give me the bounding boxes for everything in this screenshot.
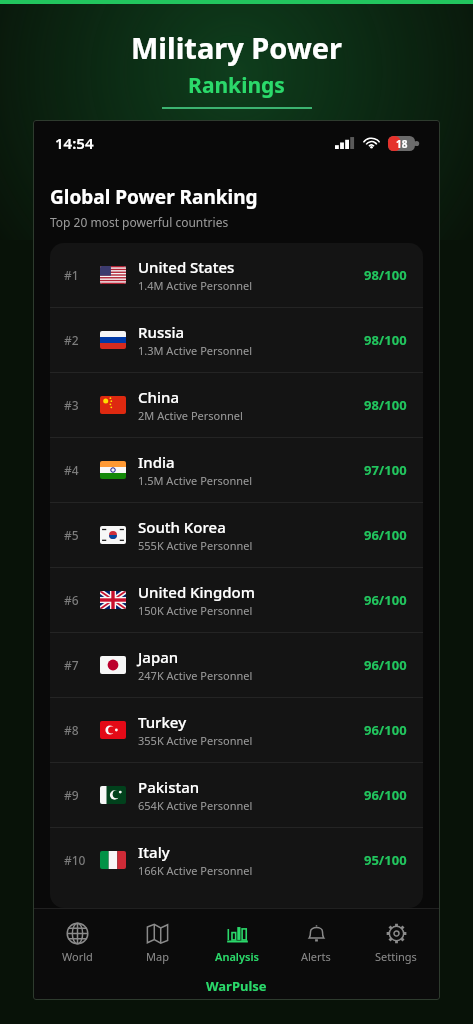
button[interactable]: Alerts (280, 920, 352, 966)
staticText: 555K Active Personnel (138, 538, 253, 553)
button[interactable]: #3 (50, 373, 423, 437)
staticText: 96/100 (364, 656, 407, 674)
staticText: 18 (396, 137, 408, 151)
staticText: United States (138, 257, 235, 277)
staticText: #7 (64, 657, 79, 673)
staticText: World (62, 949, 93, 964)
staticText: 150K Active Personnel (138, 603, 253, 618)
staticText: 654K Active Personnel (138, 798, 253, 813)
button[interactable]: Analysis (201, 920, 273, 966)
button[interactable]: #9 (50, 763, 423, 827)
staticText: 95/100 (364, 851, 407, 869)
staticText: Military Power (0, 28, 473, 67)
button[interactable]: #8 (50, 698, 423, 762)
button[interactable]: Map (121, 920, 193, 966)
button[interactable]: #10 (50, 828, 423, 892)
staticText: #2 (64, 332, 79, 348)
button[interactable]: #6 (50, 568, 423, 632)
staticText: #4 (64, 462, 79, 478)
staticText: 98/100 (364, 266, 407, 284)
staticText: China (138, 387, 179, 407)
button[interactable]: Settings (360, 920, 432, 966)
staticText: Russia (138, 322, 185, 342)
staticText: #5 (64, 527, 79, 543)
staticText: 355K Active Personnel (138, 733, 253, 748)
staticText: 97/100 (364, 461, 407, 479)
staticText: Italy (138, 842, 170, 862)
staticText: 1.5M Active Personnel (138, 473, 253, 488)
staticText: 14:54 (55, 133, 94, 153)
staticText: United Kingdom (138, 582, 255, 602)
staticText: #9 (64, 787, 79, 803)
staticText: 1.3M Active Personnel (138, 343, 253, 358)
staticText: Japan (138, 647, 179, 667)
staticText: Analysis (215, 949, 259, 964)
staticText: #1 (64, 267, 79, 283)
staticText: #6 (64, 592, 79, 608)
staticText: 96/100 (364, 721, 407, 739)
staticText: WarPulse (206, 977, 267, 995)
staticText: Pakistan (138, 777, 200, 797)
staticText: Global Power Ranking (50, 184, 258, 210)
staticText: 96/100 (364, 786, 407, 804)
staticText: Turkey (138, 712, 187, 732)
staticText: 1.4M Active Personnel (138, 278, 253, 293)
button[interactable]: #5 (50, 503, 423, 567)
button[interactable]: #2 (50, 308, 423, 372)
button[interactable]: #1 (50, 243, 423, 307)
button[interactable]: World (41, 920, 113, 966)
staticText: 96/100 (364, 526, 407, 544)
button[interactable]: #4 (50, 438, 423, 502)
staticText: 2M Active Personnel (138, 408, 243, 423)
button[interactable]: #7 (50, 633, 423, 697)
staticText: 166K Active Personnel (138, 863, 253, 878)
staticText: 247K Active Personnel (138, 668, 253, 683)
staticText: Map (146, 949, 169, 964)
staticText: #8 (64, 722, 79, 738)
staticText: 96/100 (364, 591, 407, 609)
staticText: Alerts (301, 949, 331, 964)
staticText: 98/100 (364, 396, 407, 414)
staticText: 98/100 (364, 331, 407, 349)
staticText: India (138, 452, 175, 472)
staticText: Settings (375, 949, 417, 964)
staticText: South Korea (138, 517, 226, 537)
staticText: Top 20 most powerful countries (50, 214, 229, 230)
staticText: Rankings (0, 71, 473, 100)
staticText: #3 (64, 397, 79, 413)
staticText: #10 (64, 852, 86, 868)
